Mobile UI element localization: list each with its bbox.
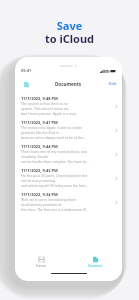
staticText: because we've always tried to be at the.… xyxy=(21,135,86,140)
button[interactable]: Documents xyxy=(68,253,122,270)
staticText: mirror every morning xyxy=(21,178,56,183)
button[interactable]: 17/1/2022, 9:48 PM xyxy=(15,94,122,118)
staticText: 17/1/2022, 9:34 PM xyxy=(21,192,58,197)
staticText: 17/1/2022, 9:47 PM xyxy=(21,120,58,125)
staticText: Documents xyxy=(88,264,103,268)
staticText: Scanner xyxy=(36,264,47,268)
staticText: That's been one of my mantras focus and xyxy=(21,149,87,154)
staticText: For the past 33 years, I have looked in … xyxy=(21,173,88,178)
staticText: The reason that Apple is able to create xyxy=(21,125,83,130)
staticText: products like the iPad is xyxy=(21,130,59,135)
staticText: 09:41 xyxy=(21,68,32,73)
staticText: simplicity. Simple xyxy=(21,154,49,159)
staticText: The system is that there is no xyxy=(21,101,68,106)
button[interactable]: 17/1/2022, 9:47 PM xyxy=(15,118,122,142)
staticText: 17/1/2022, 9:42 PM xyxy=(21,168,58,173)
staticText: and asked myself: 'If today were the las… xyxy=(21,183,88,188)
button[interactable]: Scanner xyxy=(15,253,68,270)
staticText: this class. The first one is a widescree… xyxy=(21,207,89,212)
button[interactable]: 17/1/2022, 9:42 PM xyxy=(15,166,122,190)
staticText: Well, we're we're introducing three xyxy=(21,197,76,202)
button[interactable]: 17/1/2022, 9:34 PM xyxy=(15,190,122,214)
staticText: 17/1/2022, 9:44 PM xyxy=(21,144,58,149)
staticText: don't have process. Apple is a very... xyxy=(21,111,79,116)
staticText: 17/1/2022, 9:48 PM xyxy=(21,96,58,101)
button[interactable]: Scan document xyxy=(22,80,30,88)
staticText: Save to iCloud xyxy=(0,18,139,46)
staticText: can be harder than complex. You have to.… xyxy=(21,159,89,164)
staticText: Documents xyxy=(55,81,82,87)
button[interactable]: 17/1/2022, 9:44 PM xyxy=(15,142,122,166)
staticText: revolutionary products of xyxy=(21,202,62,207)
button[interactable]: Edit xyxy=(109,81,117,87)
staticText: system. This doesn't mean we xyxy=(21,106,69,111)
